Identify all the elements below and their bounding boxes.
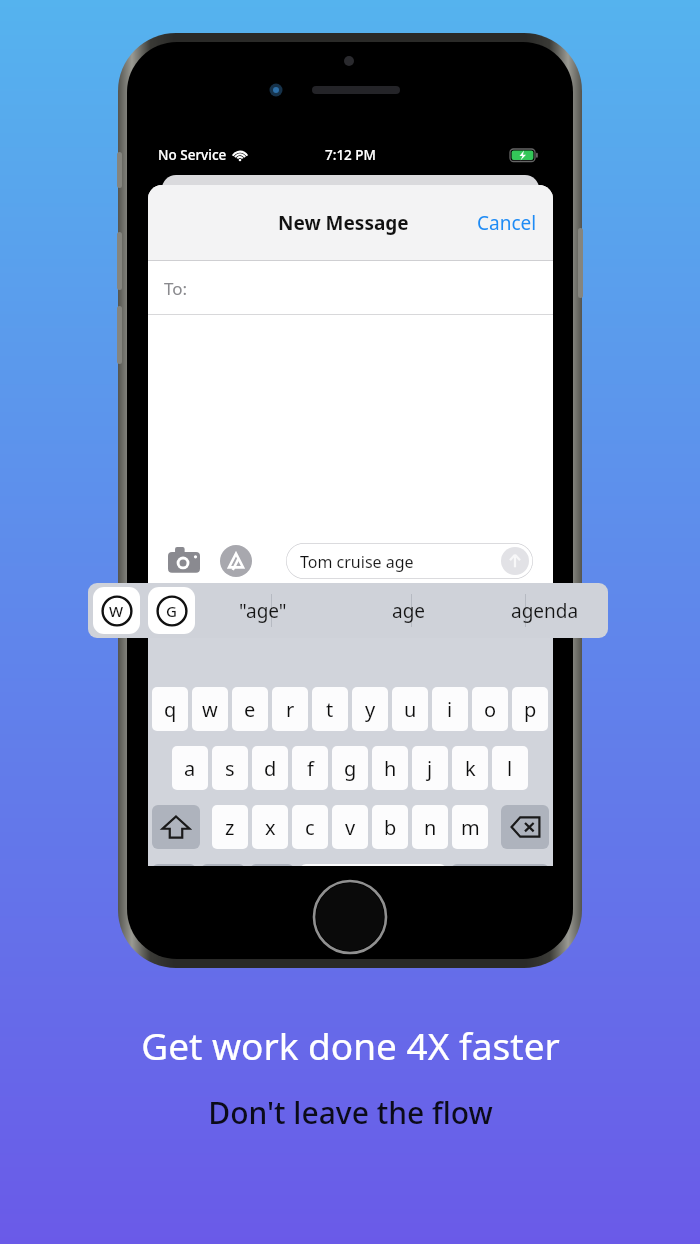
button[interactable]: k — [452, 746, 488, 790]
staticText: v — [345, 814, 356, 841]
staticText: s — [225, 755, 235, 782]
staticText: Don't leave the flow — [208, 1092, 493, 1133]
staticText: o — [484, 696, 497, 723]
button[interactable]: u — [392, 687, 428, 731]
button[interactable]: Change keyboard — [201, 864, 245, 866]
staticText: n — [424, 814, 437, 841]
button[interactable]: App Store — [220, 545, 252, 577]
button[interactable]: m — [452, 805, 488, 849]
button[interactable]: App 3 — [278, 595, 324, 641]
button[interactable]: o — [472, 687, 508, 731]
button[interactable]: Cancel — [467, 202, 547, 244]
staticText: z — [225, 814, 235, 841]
staticText: t — [326, 696, 334, 723]
button[interactable]: Shortcut W — [93, 587, 140, 634]
button[interactable]: a — [172, 746, 208, 790]
staticText: x — [265, 814, 276, 841]
button[interactable]: s — [212, 746, 248, 790]
staticText: New Message — [278, 210, 409, 236]
staticText: g — [344, 755, 357, 782]
button[interactable]: App 5 — [394, 595, 440, 641]
staticText: Tom cruise age — [300, 551, 414, 573]
staticText: r — [286, 696, 295, 723]
button[interactable]: Tom cruise age — [286, 543, 533, 579]
button[interactable]: e — [232, 687, 268, 731]
button[interactable]: age — [364, 583, 454, 638]
staticText: q — [164, 696, 177, 723]
staticText: f — [307, 755, 314, 782]
button[interactable]: App 2 — [220, 595, 266, 641]
button[interactable]: Send — [501, 547, 529, 575]
staticText: "age" — [239, 598, 287, 624]
button[interactable]: p — [512, 687, 548, 731]
button[interactable]: v — [332, 805, 368, 849]
button[interactable]: h — [372, 746, 408, 790]
staticText: h — [384, 755, 397, 782]
staticText: a — [184, 755, 196, 782]
button[interactable]: z — [212, 805, 248, 849]
staticText: k — [465, 755, 476, 782]
button[interactable]: space — [300, 864, 446, 866]
button[interactable]: d — [252, 746, 288, 790]
button[interactable]: y — [352, 687, 388, 731]
button[interactable]: r — [272, 687, 308, 731]
staticText: u — [404, 696, 417, 723]
button[interactable]: l — [492, 746, 528, 790]
staticText: age — [392, 598, 426, 624]
staticText: i — [447, 696, 453, 723]
staticText: m — [461, 814, 480, 841]
button[interactable]: Shift — [152, 805, 200, 849]
staticText: d — [264, 755, 277, 782]
staticText: agenda — [511, 598, 579, 624]
button[interactable]: i — [432, 687, 468, 731]
button[interactable]: t — [312, 687, 348, 731]
staticText: Cancel — [477, 210, 537, 236]
staticText: 7:12 PM — [325, 146, 376, 164]
button[interactable]: App 7 — [510, 595, 553, 641]
button[interactable]: return — [451, 864, 549, 866]
button[interactable]: Camera — [168, 547, 200, 575]
staticText: b — [384, 814, 397, 841]
button[interactable]: Emoji — [250, 864, 294, 866]
staticText: Get work done 4X faster — [141, 1020, 560, 1070]
button[interactable]: b — [372, 805, 408, 849]
button[interactable]: f — [292, 746, 328, 790]
staticText: j — [427, 755, 433, 782]
button[interactable]: g — [332, 746, 368, 790]
button[interactable]: agenda — [500, 583, 590, 638]
staticText: e — [244, 696, 256, 723]
staticText: l — [507, 755, 513, 782]
button[interactable]: "age" — [218, 583, 308, 638]
button[interactable]: 123 — [152, 864, 196, 866]
staticText: To: — [164, 277, 188, 300]
button[interactable]: Shortcut G — [148, 587, 195, 634]
button[interactable]: Backspace — [501, 805, 549, 849]
button[interactable]: n — [412, 805, 448, 849]
staticText: c — [305, 814, 315, 841]
staticText: No Service — [158, 146, 227, 164]
button[interactable]: x — [252, 805, 288, 849]
button[interactable]: App 1 — [162, 595, 208, 641]
staticText: p — [524, 696, 537, 723]
button[interactable]: q — [152, 687, 188, 731]
button[interactable]: j — [412, 746, 448, 790]
staticText: w — [202, 696, 218, 723]
staticText: y — [365, 696, 376, 723]
staticText: W — [109, 601, 124, 621]
button[interactable]: To: — [148, 261, 553, 315]
button[interactable]: c — [292, 805, 328, 849]
button[interactable]: w — [192, 687, 228, 731]
staticText: G — [166, 601, 177, 621]
